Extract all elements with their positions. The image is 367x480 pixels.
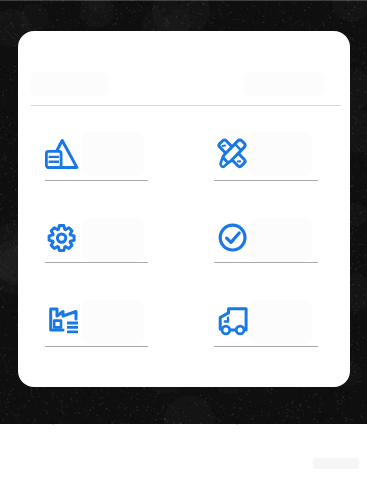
button[interactable]: [45, 220, 148, 263]
button[interactable]: [45, 134, 148, 181]
button[interactable]: [45, 302, 148, 347]
button[interactable]: [214, 134, 318, 181]
button[interactable]: [214, 220, 318, 263]
button[interactable]: [214, 302, 318, 347]
